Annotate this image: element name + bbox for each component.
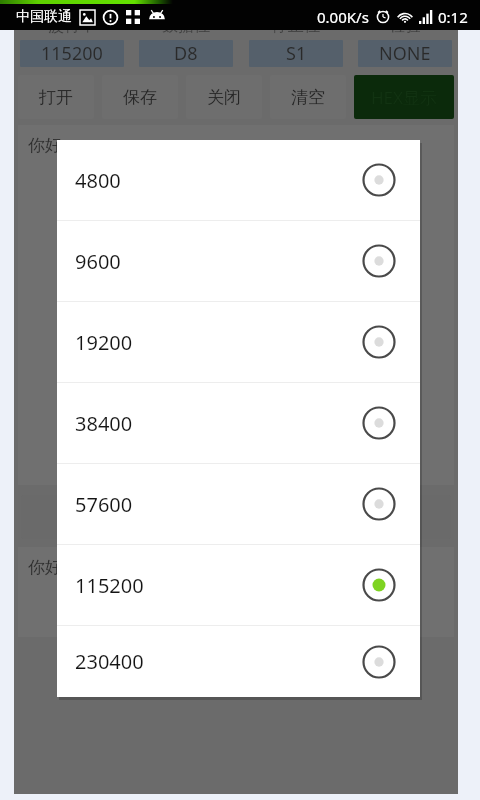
button[interactable]: 19200 (57, 302, 420, 382)
button[interactable]: 57600 (57, 464, 420, 544)
staticText: 中国联通 (16, 8, 72, 26)
button[interactable]: 4800 (57, 140, 420, 220)
staticText: 清空 (291, 87, 325, 108)
staticText: 230400 (75, 648, 144, 675)
staticText: 波特率 (48, 16, 96, 36)
staticText: 检验 (389, 16, 421, 36)
staticText: 你好 (28, 135, 62, 156)
button[interactable]: 115200 (57, 545, 420, 625)
staticText: 数据位 (162, 16, 210, 36)
button[interactable]: 38400 (57, 383, 420, 463)
button[interactable]: 打开 (18, 75, 94, 119)
button[interactable]: 数据位 (139, 16, 233, 67)
staticText: 115200 (75, 572, 144, 599)
staticText: 停止位 (272, 16, 320, 36)
staticText: 0.00K/s (317, 7, 369, 27)
staticText: 打开 (39, 87, 73, 108)
staticText: 保存 (123, 87, 157, 108)
button[interactable]: 波特率 (20, 16, 124, 67)
staticText: S1 (286, 41, 307, 66)
button[interactable]: 清空 (270, 75, 346, 119)
staticText: 你好 (28, 557, 62, 578)
staticText: 4800 (75, 167, 121, 194)
button[interactable]: 关闭 (186, 75, 262, 119)
button[interactable]: 你好 (18, 125, 454, 485)
staticText: 9600 (75, 248, 121, 275)
staticText: 关闭 (207, 87, 241, 108)
button[interactable]: 停止位 (249, 16, 343, 67)
button[interactable]: 你好 (18, 547, 454, 637)
staticText: 0:12 (438, 7, 468, 27)
button[interactable]: 230400 (57, 626, 420, 697)
staticText: 19200 (75, 329, 133, 356)
staticText: D8 (174, 41, 198, 66)
staticText: 38400 (75, 410, 133, 437)
staticText: NONE (379, 41, 431, 66)
staticText: 115200 (41, 41, 103, 66)
button[interactable]: 保存 (102, 75, 178, 119)
button[interactable]: 发送 (21, 495, 451, 539)
button[interactable]: 9600 (57, 221, 420, 301)
button[interactable]: 检验 (358, 16, 452, 67)
staticText: 57600 (75, 491, 133, 518)
